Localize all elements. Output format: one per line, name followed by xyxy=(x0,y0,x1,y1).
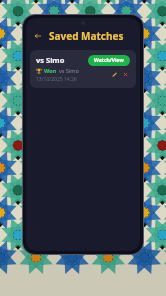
staticText: Watch/View xyxy=(94,57,124,64)
button[interactable]: Watch/View xyxy=(88,55,130,66)
staticText: Won xyxy=(44,67,57,74)
staticText: vs Simo xyxy=(36,55,65,65)
button[interactable]: Edit xyxy=(109,70,118,79)
staticText: vs Simo xyxy=(59,67,79,74)
button[interactable]: vs Simo xyxy=(30,50,136,88)
button[interactable]: Delete xyxy=(121,70,130,79)
button[interactable]: Back xyxy=(31,29,45,43)
staticText: Saved Matches xyxy=(49,29,124,43)
staticText: 13/10/2025 14:29 xyxy=(36,76,77,83)
